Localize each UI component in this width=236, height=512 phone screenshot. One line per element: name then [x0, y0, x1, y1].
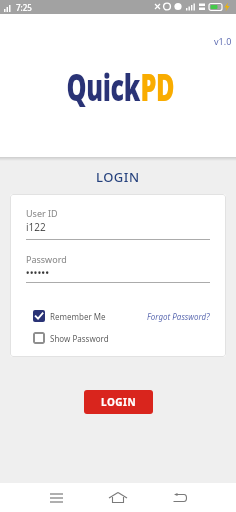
button[interactable]	[160, 483, 200, 512]
staticText: v1.0	[214, 35, 232, 47]
staticText: Remember Me	[50, 311, 106, 322]
button[interactable]	[36, 483, 76, 512]
button[interactable]: Remember Me	[26, 310, 210, 322]
button[interactable]: LOGIN	[84, 390, 153, 414]
button[interactable]	[98, 483, 138, 512]
button[interactable]: Forgot Password?	[147, 311, 210, 322]
staticText: ••••••	[26, 266, 50, 278]
staticText: LOGIN	[96, 168, 140, 186]
staticText: Quick	[66, 61, 140, 111]
staticText: User ID	[26, 207, 58, 219]
staticText: LOGIN	[101, 395, 137, 409]
button[interactable]: Show Password	[26, 332, 109, 344]
staticText: Password	[26, 253, 67, 265]
staticText: Show Password	[50, 333, 109, 344]
staticText: 7:25	[16, 2, 32, 13]
staticText: PD	[141, 61, 175, 111]
staticText: i122	[26, 220, 46, 234]
